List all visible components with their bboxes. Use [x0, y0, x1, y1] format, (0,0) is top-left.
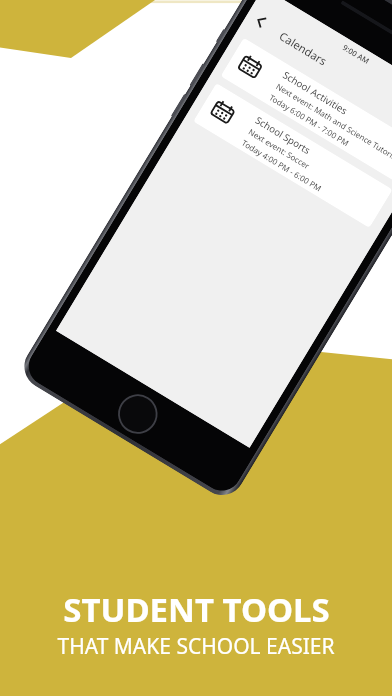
- button[interactable]: Home: [110, 387, 165, 441]
- staticText: Calendars: [277, 28, 330, 69]
- staticText: Today 6:00 PM - 7:00 PM: [267, 92, 352, 149]
- button[interactable]: School Activities: [220, 38, 392, 183]
- staticText: School Sports: [253, 114, 313, 157]
- staticText: STUDENT TOOLS: [63, 587, 330, 632]
- staticText: THAT MAKE SCHOOL EASIER: [57, 632, 335, 661]
- staticText: Next event: Math and Science Tutoring: [274, 80, 392, 165]
- button[interactable]: Back: [250, 10, 272, 32]
- staticText: Today 4:00 PM - 6:00 PM: [240, 137, 324, 194]
- button[interactable]: School Sports: [193, 83, 392, 228]
- staticText: School Activities: [280, 68, 350, 118]
- staticText: Next event: Soccer: [247, 126, 312, 171]
- staticText: 9:00 AM: [341, 42, 372, 66]
